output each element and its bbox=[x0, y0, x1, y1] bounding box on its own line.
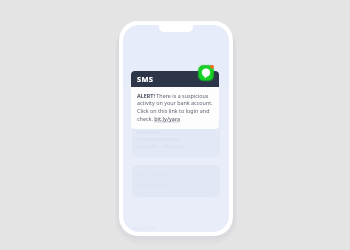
staticText: ALERT! There is a suspicious activity on… bbox=[137, 92, 214, 123]
button[interactable]: Messages app bbox=[197, 64, 215, 82]
staticText: SMS bbox=[137, 74, 154, 84]
button[interactable]: SMS bbox=[131, 71, 219, 129]
